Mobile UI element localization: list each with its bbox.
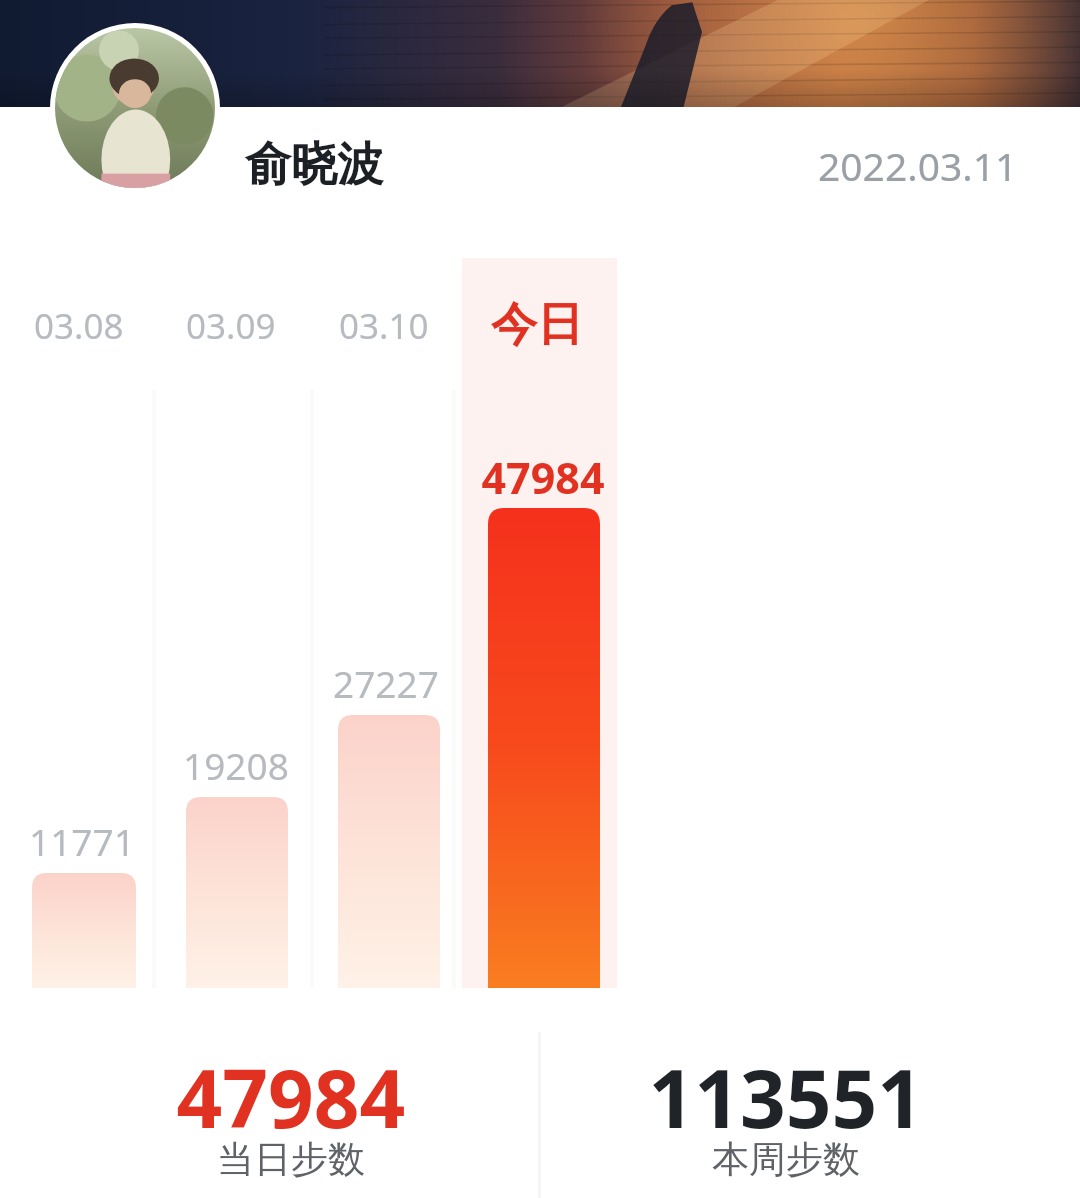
button[interactable]: Daily step statistics (0, 0, 1080, 1198)
